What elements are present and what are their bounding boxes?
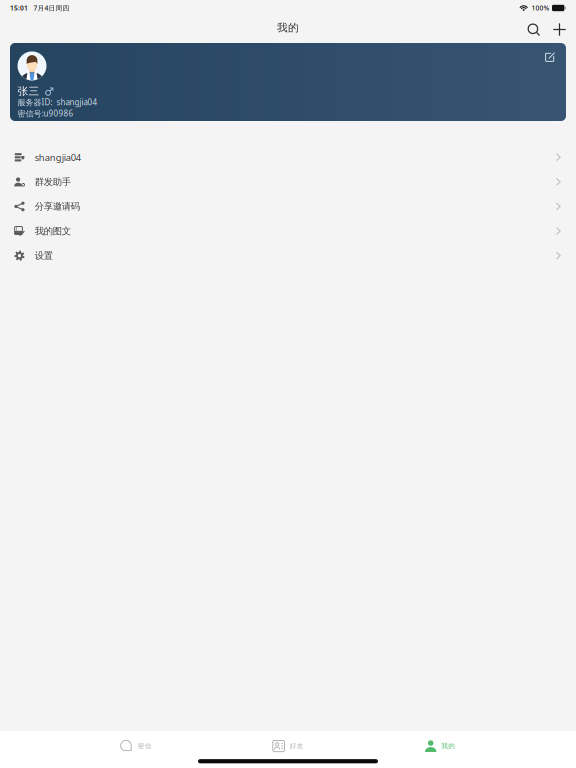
staticText: 100% xyxy=(531,4,549,12)
staticText: 张三 xyxy=(17,85,39,98)
staticText: 7月4日周四 xyxy=(33,4,69,12)
staticText: 我的图文 xyxy=(35,225,71,237)
button[interactable]: 设置 xyxy=(0,243,576,268)
staticText: 15:01 xyxy=(10,4,28,12)
button[interactable]: 我的图文 xyxy=(0,219,576,243)
staticText: 我的 xyxy=(441,742,455,750)
button[interactable]: 好友 xyxy=(212,737,364,755)
staticText: shangjia04 xyxy=(35,151,81,163)
staticText: 我的 xyxy=(277,21,299,34)
staticText: 分享邀请码 xyxy=(35,201,80,212)
button[interactable]: 添加 xyxy=(546,18,572,41)
button[interactable]: 群发助手 xyxy=(0,170,576,194)
button[interactable]: 密信 xyxy=(60,737,212,755)
button[interactable]: 我的 xyxy=(364,737,516,755)
button[interactable]: 分享邀请码 xyxy=(0,194,576,219)
staticText: 设置 xyxy=(35,250,53,261)
staticText: 好友 xyxy=(290,742,304,750)
button[interactable]: 搜索 xyxy=(520,18,546,41)
staticText: 密信 xyxy=(138,742,152,750)
staticText: 密信号:u90986 xyxy=(17,108,73,119)
button[interactable]: 编辑资料 xyxy=(545,52,555,62)
staticText: 服务器ID: shangjia04 xyxy=(17,97,97,107)
button[interactable]: 张三 xyxy=(0,43,576,121)
button[interactable]: shangjia04 xyxy=(0,145,576,170)
staticText: 群发助手 xyxy=(35,176,71,188)
